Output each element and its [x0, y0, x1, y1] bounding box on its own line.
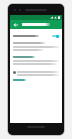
button[interactable]: Toggle setting: [52, 34, 59, 38]
button[interactable]: Toggle setting: [13, 32, 59, 39]
button[interactable]: Back: [13, 22, 19, 28]
button[interactable]: [13, 78, 26, 82]
